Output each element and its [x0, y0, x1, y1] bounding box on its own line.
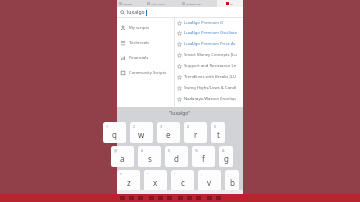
staticText: Nadaraya-Watson Envelop — [184, 96, 236, 102]
other: Favorite — [177, 64, 182, 69]
button[interactable]: odTube — [119, 0, 147, 7]
staticText: LuxAlgo Premium O — [184, 20, 224, 26]
staticText: $ — [168, 148, 171, 153]
staticText: a — [120, 153, 125, 164]
button[interactable]: ; — [225, 170, 239, 191]
other: Search — [120, 10, 125, 15]
staticText: Technicals — [129, 40, 150, 46]
button[interactable]: Favorite — [177, 83, 243, 93]
staticText: v — [207, 177, 212, 188]
button[interactable]: 2 — [130, 122, 153, 143]
staticText: My scripts — [129, 25, 149, 31]
staticText: 1 — [106, 124, 109, 129]
staticText: # — [141, 148, 144, 153]
staticText: 4 — [187, 124, 190, 129]
button[interactable]: & — [219, 146, 233, 167]
button[interactable]: 3 — [157, 122, 180, 143]
other: Favorite — [177, 75, 182, 80]
staticText: b — [230, 177, 235, 188]
button[interactable]: My scripts — [120, 23, 174, 32]
other: Favorite — [177, 42, 182, 47]
staticText: "luxalgo" — [169, 110, 191, 117]
staticText: Support and Resistance Le — [184, 63, 237, 69]
staticText: ; — [228, 172, 229, 177]
staticText: NIFTY 50 IN.. — [151, 2, 167, 5]
other: Favorite — [177, 31, 182, 36]
staticText: Financials — [129, 55, 149, 61]
other: Favorite — [177, 86, 182, 91]
other: Favorite — [177, 21, 182, 26]
button[interactable]: Community Scripts — [120, 68, 174, 77]
button[interactable]: 1 — [103, 122, 126, 143]
staticText: 2 — [133, 124, 136, 129]
staticText: Trendlines with Breaks [LU — [184, 74, 237, 80]
button[interactable]: hammer can.. — [182, 0, 217, 7]
staticText: x — [153, 177, 158, 188]
button[interactable]: Favorite — [177, 61, 243, 71]
staticText: g — [224, 153, 229, 164]
staticText: odTube — [123, 2, 132, 5]
staticText: e — [166, 129, 171, 140]
staticText: LuxAlgo Premium Price Ac — [184, 41, 236, 47]
button[interactable]: $ — [165, 146, 188, 167]
button[interactable]: Search — [120, 7, 243, 18]
button[interactable]: Technicals — [120, 38, 174, 47]
staticText: & — [222, 148, 225, 153]
staticText: LuxAlgo Premium Oscillato — [184, 30, 238, 36]
button[interactable]: NIFTY 50 IN.. — [147, 0, 182, 7]
button[interactable]: Favorite — [177, 39, 243, 49]
button[interactable]: " — [144, 170, 167, 191]
staticText: Community Scripts — [129, 70, 167, 76]
button[interactable]: @ — [111, 146, 134, 167]
button[interactable]: ' — [171, 170, 194, 191]
staticText: d — [174, 153, 179, 164]
button[interactable]: Favorite — [177, 94, 243, 104]
staticText: " — [147, 172, 149, 177]
staticText: 3 — [160, 124, 163, 129]
staticText: 5 — [214, 124, 217, 129]
staticText: : — [201, 172, 202, 177]
button[interactable]: 4 — [184, 122, 207, 143]
button[interactable]: "luxalgo" — [117, 107, 243, 119]
button[interactable]: Favorite — [177, 28, 243, 38]
staticText: c — [181, 177, 185, 188]
button[interactable]: # — [138, 146, 161, 167]
staticText: luxalgo — [127, 9, 145, 16]
button[interactable]: Ch — [217, 0, 243, 7]
button[interactable]: : — [198, 170, 221, 191]
staticText: % — [195, 148, 198, 153]
button[interactable]: Favorite — [177, 19, 243, 27]
button[interactable]: * — [117, 170, 140, 191]
staticText: f — [202, 153, 205, 164]
button[interactable]: Favorite — [177, 72, 243, 82]
staticText: @ — [114, 148, 118, 153]
staticText: s — [148, 153, 152, 164]
other: Favorite — [177, 97, 182, 102]
button[interactable]: % — [192, 146, 215, 167]
staticText: ' — [174, 172, 175, 177]
button[interactable]: Financials — [120, 53, 174, 62]
staticText: r — [194, 129, 198, 140]
staticText: z — [127, 177, 131, 188]
staticText: t — [217, 129, 220, 140]
staticText: Ch — [230, 2, 234, 5]
staticText: q — [112, 129, 117, 140]
staticText: Swing Highs/Lows & Candl — [184, 85, 237, 91]
staticText: * — [120, 172, 122, 177]
staticText: Smart Money Concepts [Lu — [184, 52, 237, 58]
staticText: w — [138, 129, 145, 140]
button[interactable]: 5 — [211, 122, 225, 143]
staticText: hammer can.. — [186, 2, 203, 5]
button[interactable]: Favorite — [177, 50, 243, 60]
